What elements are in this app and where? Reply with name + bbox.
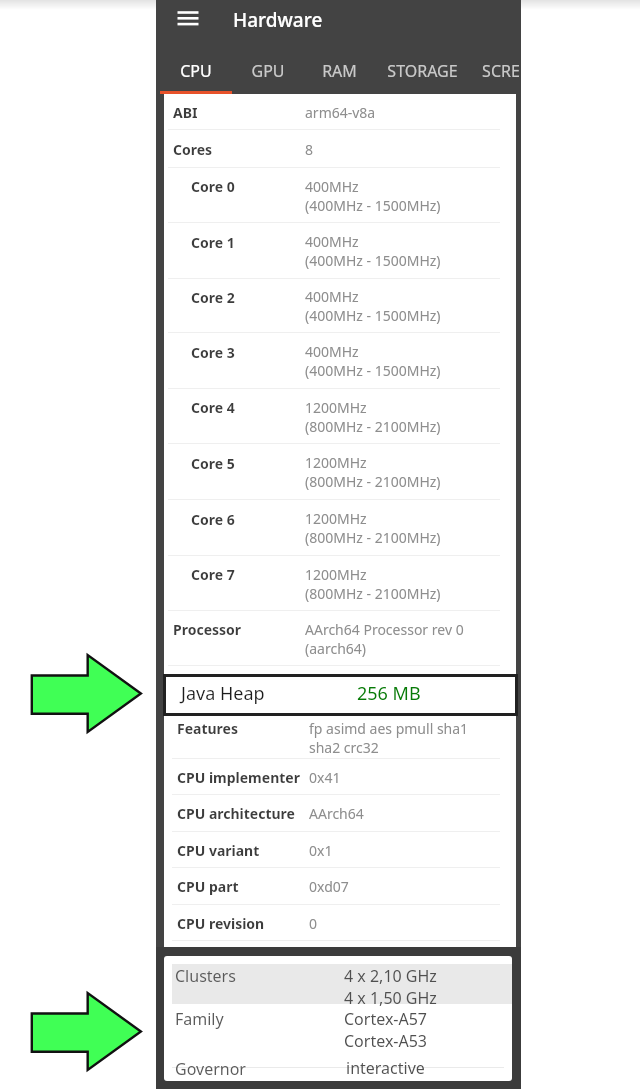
staticText: Core 3: [191, 343, 235, 362]
staticText: CPU: [180, 60, 212, 82]
button[interactable]: Core 6: [164, 500, 516, 556]
staticText: (aarch64): [305, 639, 366, 658]
button[interactable]: STORAGE: [377, 56, 468, 86]
button[interactable]: Cores: [164, 130, 516, 168]
staticText: Cores: [173, 140, 213, 159]
staticText: Cortex-A57: [344, 1008, 428, 1030]
staticText: Core 5: [191, 454, 235, 473]
staticText: (400MHz - 1500MHz): [305, 306, 441, 325]
staticText: Features: [177, 719, 238, 738]
button[interactable]: GPU: [240, 56, 295, 86]
staticText: CPU architecture: [177, 804, 295, 823]
staticText: Core 6: [191, 510, 235, 529]
button[interactable]: Core 0: [164, 168, 516, 223]
staticText: 0x1: [309, 841, 333, 860]
button[interactable]: [172, 964, 512, 1004]
staticText: CPU implementer: [177, 768, 300, 787]
staticText: sha2 crc32: [309, 738, 379, 757]
staticText: 400MHz: [305, 177, 359, 196]
staticText: CPU part: [177, 877, 239, 896]
button[interactable]: Processor: [164, 611, 516, 666]
staticText: Clusters: [175, 965, 236, 987]
staticText: Cortex-A53: [344, 1030, 428, 1052]
staticText: Governor: [175, 1058, 246, 1080]
staticText: 4 x 2,10 GHz: [344, 965, 437, 987]
button[interactable]: Core 4: [164, 389, 516, 444]
staticText: 400MHz: [305, 287, 359, 306]
staticText: 1200MHz: [305, 453, 367, 472]
staticText: 0x41: [309, 768, 341, 787]
staticText: 4 x 1,50 GHz: [344, 987, 437, 1009]
staticText: Core 2: [191, 288, 235, 307]
button[interactable]: CPU revision: [164, 905, 516, 941]
staticText: 400MHz: [305, 232, 359, 251]
button[interactable]: Core 2: [164, 279, 516, 333]
staticText: CPU revision: [177, 914, 265, 933]
staticText: STORAGE: [387, 60, 458, 82]
staticText: Processor: [173, 620, 242, 639]
staticText: Core 7: [191, 565, 235, 584]
staticText: CPU variant: [177, 841, 260, 860]
button[interactable]: CPU part: [164, 868, 516, 905]
staticText: 0xd07: [309, 877, 349, 896]
button[interactable]: CPU: [169, 56, 223, 86]
staticText: 400MHz: [305, 342, 359, 361]
staticText: ABI: [173, 103, 198, 122]
button[interactable]: Java Heap: [166, 677, 515, 713]
staticText: (800MHz - 2100MHz): [305, 528, 441, 547]
staticText: 1200MHz: [305, 398, 367, 417]
staticText: Family: [175, 1008, 224, 1030]
staticText: Core 1: [191, 233, 235, 252]
staticText: (800MHz - 2100MHz): [305, 584, 441, 603]
staticText: AArch64: [309, 804, 364, 823]
button[interactable]: [164, 666, 516, 716]
button[interactable]: Open navigation menu: [176, 5, 202, 31]
staticText: RAM: [322, 60, 357, 82]
button[interactable]: ABI: [164, 94, 516, 130]
staticText: Java Heap: [181, 681, 265, 706]
staticText: (800MHz - 2100MHz): [305, 417, 441, 436]
staticText: 1200MHz: [305, 565, 367, 584]
staticText: Core 4: [191, 398, 235, 417]
staticText: 1200MHz: [305, 509, 367, 528]
staticText: 256 MB: [357, 681, 421, 706]
button[interactable]: Features: [164, 716, 516, 759]
button[interactable]: Core 7: [164, 556, 516, 611]
staticText: fp asimd aes pmull sha1: [309, 719, 469, 738]
button[interactable]: Core 3: [164, 333, 516, 389]
staticText: (400MHz - 1500MHz): [305, 251, 441, 270]
staticText: (800MHz - 2100MHz): [305, 472, 441, 491]
staticText: 0: [309, 914, 318, 933]
button[interactable]: RAM: [311, 56, 367, 86]
staticText: Core 0: [191, 177, 235, 196]
button[interactable]: CPU architecture: [164, 795, 516, 832]
button[interactable]: SCREEN: [465, 56, 521, 86]
button[interactable]: Core 1: [164, 223, 516, 279]
staticText: (400MHz - 1500MHz): [305, 196, 441, 215]
staticText: Hardware: [233, 7, 323, 33]
staticText: AArch64 Processor rev 0: [305, 620, 464, 639]
staticText: interactive: [346, 1057, 425, 1079]
button[interactable]: CPU implementer: [164, 759, 516, 795]
staticText: 8: [305, 140, 314, 159]
button[interactable]: Core 5: [164, 444, 516, 500]
staticText: GPU: [251, 60, 285, 82]
staticText: SCREEN: [482, 60, 521, 82]
staticText: arm64-v8a: [305, 103, 376, 122]
button[interactable]: CPU variant: [164, 832, 516, 868]
staticText: (400MHz - 1500MHz): [305, 361, 441, 380]
